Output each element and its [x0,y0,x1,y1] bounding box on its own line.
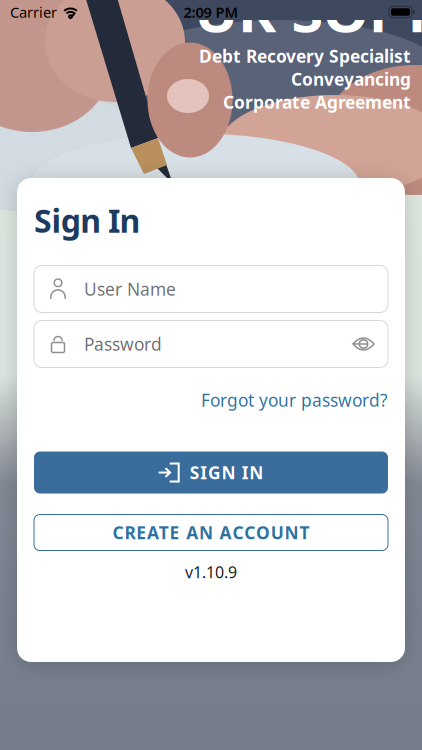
staticText: Corporate Agreement [223,90,411,113]
staticText: SIGN IN [190,461,263,484]
button[interactable]: Forgot your password? [201,388,388,411]
staticText: v1.10.9 [185,561,237,583]
staticText: Debt Recovery Specialist [199,44,411,67]
button[interactable]: Show password [353,337,388,351]
staticText: Sign In [34,199,140,241]
button[interactable]: Password [34,320,388,367]
staticText: Carrier [10,2,57,22]
staticText: Conveyancing [291,67,411,90]
staticText: Password [84,332,162,355]
staticText: User Name [84,277,176,300]
button[interactable]: CREATE AN ACCOUNT [34,514,388,550]
staticText: UK SOFT [214,0,422,47]
staticText: Forgot your password? [201,388,388,411]
staticText: CREATE AN ACCOUNT [113,521,309,544]
button[interactable]: User Name [34,265,388,312]
staticText: 2:09 PM [183,2,238,22]
button[interactable]: SIGN IN [34,451,388,493]
